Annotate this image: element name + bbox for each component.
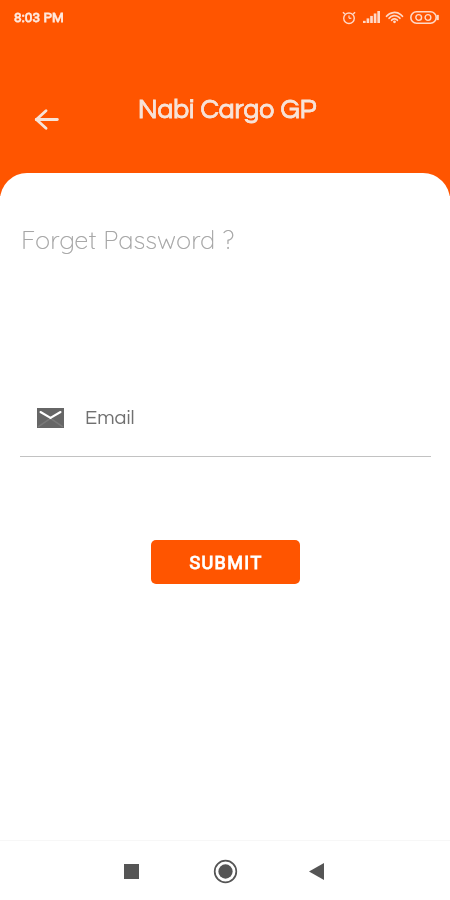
staticText: Nabi Cargo GP: [138, 96, 317, 123]
staticText: 8:03 PM: [14, 9, 64, 25]
staticText: SUBMIT: [189, 552, 263, 573]
button[interactable]: Home: [201, 847, 249, 895]
staticText: Nabi Cargo GP: [138, 96, 317, 123]
button[interactable]: Email: [20, 391, 431, 457]
button[interactable]: Back: [23, 96, 69, 142]
button[interactable]: SUBMIT: [151, 540, 300, 584]
staticText: Forget Password ?: [21, 224, 235, 256]
button[interactable]: Back: [292, 847, 340, 895]
staticText: Email: [85, 408, 135, 429]
button[interactable]: Recents: [107, 847, 155, 895]
